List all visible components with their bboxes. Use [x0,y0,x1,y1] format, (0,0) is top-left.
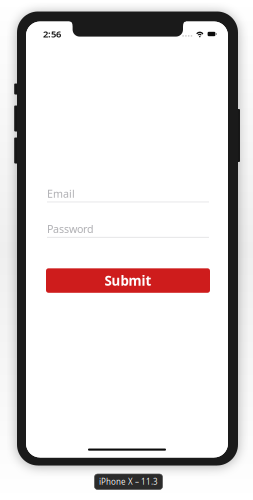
staticText: 2:56 [43,28,61,40]
staticText: Submit [104,272,151,289]
staticText: Email [47,186,75,201]
staticText: Password [47,222,94,236]
staticText: iPhone X – 11.3 [99,476,158,487]
button[interactable]: Submit [46,268,210,293]
